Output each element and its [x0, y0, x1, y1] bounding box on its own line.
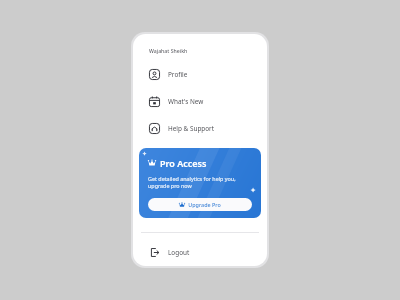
staticText: Upgrade Pro	[188, 201, 221, 208]
other: Profile	[149, 69, 160, 80]
staticText: Logout	[168, 248, 190, 257]
button[interactable]: Help & Support	[133, 119, 267, 137]
button[interactable]: Pro Access	[139, 148, 261, 218]
staticText: What's New	[168, 97, 204, 106]
other: Help & Support	[149, 123, 160, 134]
staticText: Get detailed analytics for help you, upg…	[148, 175, 236, 190]
staticText: Help & Support	[168, 124, 215, 133]
button[interactable]: Profile	[133, 65, 267, 83]
staticText: Pro Access	[160, 157, 207, 169]
other: What's New	[149, 96, 160, 107]
other: Logout	[149, 247, 160, 258]
staticText: Wajahat Sheikh	[149, 47, 188, 54]
staticText: Profile	[168, 70, 188, 79]
button[interactable]: Upgrade Pro	[148, 198, 252, 211]
button[interactable]: Logout	[133, 243, 267, 261]
button[interactable]: What's New	[133, 92, 267, 110]
